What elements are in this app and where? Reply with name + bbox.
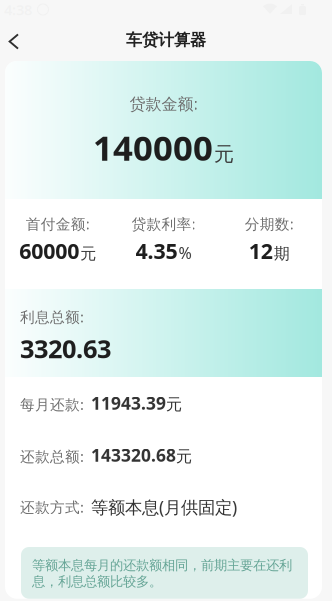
staticText: 还款方式: xyxy=(20,497,84,517)
staticText: 等额本息(月供固定) xyxy=(91,495,237,518)
staticText: 车贷计算器 xyxy=(126,30,206,50)
staticText: 利息总额: xyxy=(20,307,84,326)
staticText: 每月还款: xyxy=(20,394,84,414)
staticText: % xyxy=(178,242,191,263)
staticText: 140000 xyxy=(93,124,213,170)
staticText: 贷款利率: xyxy=(131,214,195,233)
staticText: 分期数: xyxy=(245,214,294,233)
staticText: 还款总额: xyxy=(20,446,84,466)
staticText: 元 xyxy=(166,395,182,414)
staticText: 11943.39 xyxy=(91,391,166,414)
staticText: 3320.63 xyxy=(20,331,111,365)
button[interactable]: Back xyxy=(0,21,31,58)
staticText: 143320.68 xyxy=(91,443,176,466)
staticText: 4.35 xyxy=(135,236,177,265)
staticText: 元 xyxy=(214,142,234,166)
staticText: 贷款金额: xyxy=(129,93,197,114)
staticText: 首付金额: xyxy=(26,214,90,233)
staticText: 元 xyxy=(176,447,192,466)
staticText: 60000 xyxy=(19,236,79,265)
staticText: 等额本息每月的还款额相同，前期主要在还利息，利息总额比较多。 xyxy=(32,557,292,590)
staticText: 期 xyxy=(274,244,290,263)
staticText: 元 xyxy=(80,244,96,263)
staticText: 12 xyxy=(249,236,273,265)
